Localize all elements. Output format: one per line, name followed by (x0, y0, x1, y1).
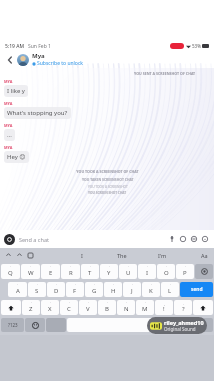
button[interactable]: · (61, 264, 80, 279)
button[interactable]: Gallery (189, 234, 199, 244)
button[interactable]: · (66, 282, 84, 297)
staticText: F (73, 287, 77, 295)
button[interactable]: Clipboard (26, 251, 35, 260)
button[interactable]: The (102, 248, 142, 262)
button[interactable]: · (28, 282, 46, 297)
button[interactable]: Shift (193, 300, 213, 315)
button[interactable]: Undo (4, 251, 13, 260)
button[interactable]: · (22, 300, 40, 315)
staticText: X (48, 305, 52, 313)
staticText: I (146, 269, 149, 277)
button[interactable]: Shift (1, 300, 21, 315)
button[interactable]: Enter (187, 318, 213, 332)
staticText: 53% (192, 43, 201, 49)
button[interactable]: · (157, 264, 175, 279)
button[interactable]: · (138, 264, 156, 279)
staticText: Y (107, 269, 111, 277)
button[interactable]: send (180, 282, 213, 297)
staticText: · (69, 300, 70, 305)
staticText: · (185, 264, 186, 269)
staticText: J (131, 287, 133, 295)
button[interactable]: riley_ahmed10 (147, 317, 207, 334)
button[interactable]: MYA (4, 101, 71, 119)
staticText: Mya (32, 52, 45, 60)
staticText: · (56, 282, 57, 287)
staticText: MYA (4, 145, 13, 150)
staticText: D (54, 287, 59, 295)
staticText: · (88, 300, 89, 305)
button[interactable]: I'm (142, 248, 182, 262)
button[interactable]: · (85, 282, 103, 297)
staticText: Q (8, 269, 13, 277)
staticText: · (94, 282, 95, 287)
button[interactable]: Redo (15, 251, 24, 260)
staticText: Subscribe to unlock (37, 60, 83, 67)
staticText: Original Sound (164, 326, 196, 332)
button[interactable]: · (21, 264, 40, 279)
button[interactable]: · (136, 300, 154, 315)
button[interactable]: · (142, 282, 160, 297)
staticText: . (183, 301, 184, 306)
staticText: MYA (4, 101, 13, 106)
button[interactable]: · (81, 264, 99, 279)
staticText: · (30, 264, 31, 269)
button[interactable]: I (62, 248, 102, 262)
button[interactable]: · (119, 264, 137, 279)
staticText: E (49, 269, 53, 277)
staticText: · (75, 282, 76, 287)
staticText: T (88, 269, 92, 277)
staticText: MYA (4, 79, 13, 84)
staticText: ?123 (8, 322, 18, 328)
staticText: · (37, 282, 38, 287)
button[interactable]: Camera (4, 234, 15, 245)
staticText: I (81, 252, 83, 259)
button[interactable]: · (60, 300, 78, 315)
staticText: · (50, 300, 51, 305)
button[interactable]: MYA (4, 123, 15, 141)
button[interactable]: Space (67, 318, 186, 332)
button[interactable]: Sticker (178, 234, 188, 244)
button[interactable]: Emoji (200, 234, 210, 244)
button[interactable]: ?123 (1, 318, 24, 332)
staticText: P (183, 269, 187, 277)
button[interactable]: · (41, 264, 60, 279)
staticText: I'm (158, 252, 167, 259)
staticText: · (70, 264, 71, 269)
staticText: MYA (4, 123, 13, 128)
button[interactable]: , (155, 300, 173, 315)
staticText: S (35, 287, 39, 295)
button[interactable]: · (117, 300, 135, 315)
button[interactable]: Profile (17, 54, 29, 66)
button[interactable]: . (174, 300, 192, 315)
button[interactable]: · (98, 300, 116, 315)
button[interactable]: · (100, 264, 118, 279)
staticText: O (164, 269, 169, 277)
button[interactable]: · (161, 282, 179, 297)
staticText: YOU TAKEN SCREENSHOT CHAT (82, 177, 134, 182)
staticText: · (145, 300, 146, 305)
staticText: W (28, 269, 34, 277)
button[interactable]: Aa (198, 248, 210, 262)
button[interactable]: · (41, 300, 59, 315)
button[interactable]: Mya (32, 52, 210, 67)
button[interactable]: MYA (4, 145, 29, 163)
button[interactable]: · (176, 264, 194, 279)
button[interactable]: · (104, 282, 122, 297)
button[interactable]: Emoji (25, 318, 45, 332)
button[interactable]: · (79, 300, 97, 315)
staticText: riley_ahmed10 (164, 319, 204, 326)
staticText: U (126, 269, 131, 277)
staticText: R (69, 269, 73, 277)
button[interactable]: · (47, 282, 65, 297)
button[interactable]: Backspace (195, 264, 213, 279)
button[interactable]: · (123, 282, 141, 297)
button[interactable]: Back (4, 54, 15, 65)
staticText: · (50, 264, 51, 269)
button[interactable]: MYA (4, 79, 28, 97)
staticText: · (128, 264, 129, 269)
button[interactable]: Voice (167, 234, 177, 244)
button[interactable]: · (1, 264, 20, 279)
button[interactable]: · (8, 282, 27, 297)
staticText: Hey 😊 (7, 153, 26, 161)
